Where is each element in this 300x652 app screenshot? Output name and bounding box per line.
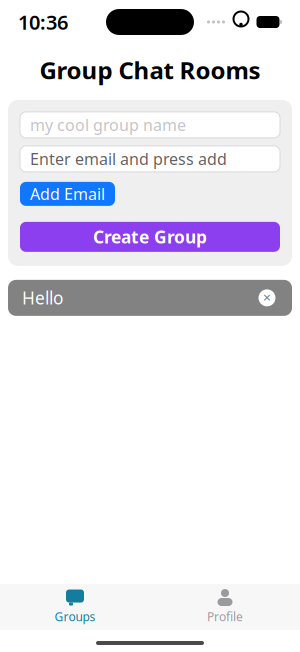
staticText: ✕ [262,292,271,304]
staticText: Profile [207,608,243,624]
staticText: Group Chat Rooms [39,54,260,86]
button[interactable]: Remove Hello group [256,287,278,309]
staticText: Groups [54,608,95,624]
staticText: Hello [22,286,63,309]
staticText: Enter email and press add [30,148,227,169]
staticText: Create Group [93,225,207,248]
button[interactable]: Groups [0,585,150,629]
staticText: 10:36 [18,9,68,35]
staticText: Add Email [30,183,105,204]
button[interactable]: Add Email [20,182,115,206]
button[interactable]: Create Group [20,222,280,252]
staticText: my cool group name [30,114,186,135]
button[interactable]: Profile [150,585,300,629]
